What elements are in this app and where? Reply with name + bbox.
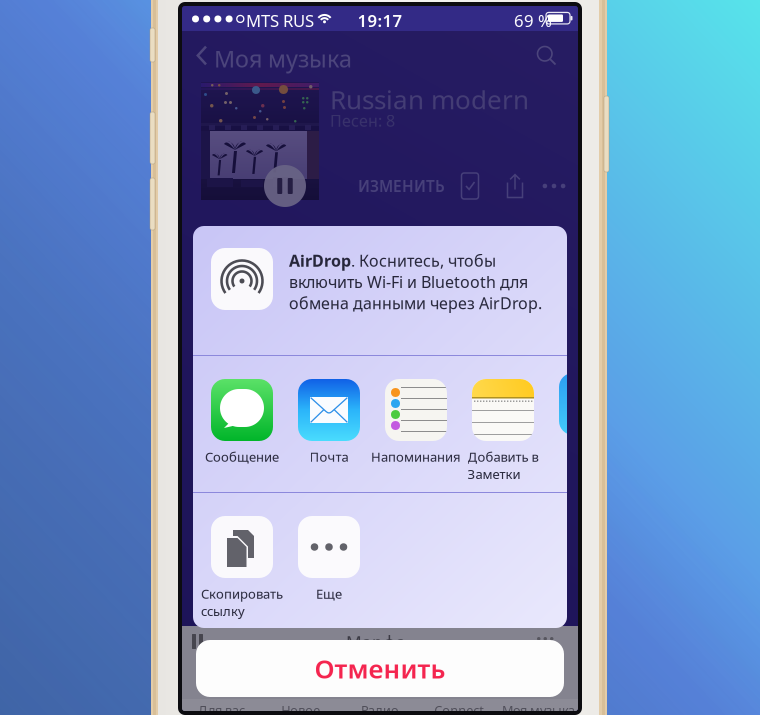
staticText: Марфа bbox=[346, 631, 406, 654]
button[interactable]: Search bbox=[527, 39, 567, 73]
button[interactable]: Connect bbox=[420, 699, 499, 715]
staticText: Connect bbox=[434, 702, 484, 715]
button[interactable]: Для вас bbox=[182, 699, 261, 715]
button[interactable]: AirDrop. Коснитесь, чтобы включить Wi-Fi… bbox=[193, 226, 567, 355]
button[interactable]: Добавить в Заметки bbox=[451, 356, 555, 472]
button[interactable]: ИЗМЕНИТЬ bbox=[358, 170, 458, 202]
staticText: Радио bbox=[361, 702, 399, 715]
staticText: ИЗМЕНИТЬ bbox=[358, 176, 445, 196]
staticText: Скопировать ссылку bbox=[201, 585, 283, 620]
staticText: Моя музыка bbox=[214, 43, 352, 74]
staticText: Еще bbox=[316, 585, 342, 602]
button[interactable]: Радио bbox=[340, 699, 420, 715]
staticText: Отменить bbox=[314, 651, 445, 686]
button[interactable]: Новое bbox=[261, 699, 340, 715]
button[interactable]: Download bbox=[453, 170, 487, 202]
button[interactable]: Моя музыка bbox=[499, 699, 578, 715]
staticText: Почта bbox=[309, 448, 348, 465]
staticText: AirDrop. Коснитесь, чтобы включить Wi-Fi… bbox=[289, 250, 542, 314]
staticText: Моя музыка bbox=[502, 702, 575, 715]
button[interactable]: Почта bbox=[277, 356, 381, 472]
button[interactable]: Напоминания bbox=[364, 356, 468, 472]
button[interactable]: Сообщение bbox=[190, 356, 294, 472]
button[interactable]: Моя музыка bbox=[192, 39, 342, 73]
button[interactable]: More bbox=[537, 170, 571, 202]
button[interactable]: Share bbox=[498, 170, 532, 202]
staticText: Для вас bbox=[198, 702, 245, 715]
staticText: Песен: 8 bbox=[330, 110, 395, 131]
staticText: 19:17 bbox=[357, 9, 402, 31]
staticText: Новое bbox=[281, 702, 320, 715]
staticText: Сообщение bbox=[205, 448, 279, 465]
button[interactable]: Скопировать ссылку bbox=[190, 493, 294, 609]
staticText: Напоминания bbox=[371, 448, 461, 465]
staticText: MTS RUS bbox=[246, 9, 314, 31]
staticText: Russian modern bbox=[330, 82, 529, 116]
staticText: 69 % bbox=[514, 9, 552, 31]
button[interactable]: Еще bbox=[277, 493, 381, 609]
button[interactable]: Отменить bbox=[196, 640, 564, 697]
staticText: Добавить в Заметки bbox=[467, 448, 538, 483]
button[interactable]: Pause bbox=[264, 165, 306, 207]
